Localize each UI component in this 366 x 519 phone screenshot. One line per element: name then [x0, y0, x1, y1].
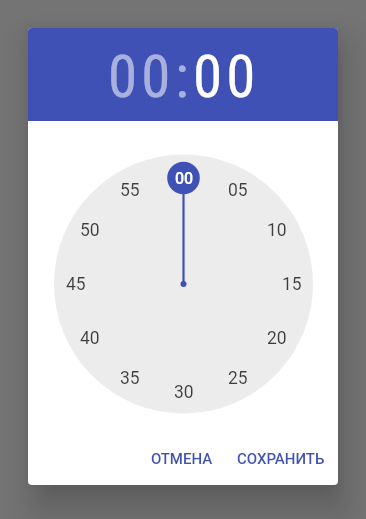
button[interactable]: 00 [169, 163, 199, 193]
button[interactable]: 45 [61, 269, 91, 299]
button[interactable]: 20 [262, 323, 292, 353]
staticText: 30 [174, 382, 194, 403]
button[interactable]: 25 [223, 363, 253, 393]
staticText: 00 [175, 169, 194, 188]
staticText: 35 [120, 368, 140, 389]
staticText: : [175, 42, 193, 111]
staticText: ОТМЕНА [151, 450, 213, 468]
staticText: СОХРАНИТЬ [237, 450, 325, 468]
staticText: 50 [80, 220, 100, 241]
button[interactable]: 00 [193, 42, 260, 111]
staticText: 10 [267, 220, 287, 241]
staticText: 15 [282, 274, 302, 295]
button[interactable]: 15 [277, 269, 307, 299]
button[interactable]: 05 [223, 175, 253, 205]
staticText: 45 [66, 274, 86, 295]
staticText: 40 [80, 328, 100, 349]
button[interactable]: 35 [115, 363, 145, 393]
button[interactable]: 50 [75, 215, 105, 245]
button[interactable]: 00 [108, 42, 175, 111]
staticText: 25 [228, 368, 248, 389]
button[interactable]: СОХРАНИТЬ [229, 440, 333, 478]
button[interactable]: 30 [169, 377, 199, 407]
button[interactable]: 55 [115, 175, 145, 205]
staticText: 20 [267, 328, 287, 349]
staticText: 05 [228, 180, 248, 201]
button[interactable]: 40 [75, 323, 105, 353]
button[interactable]: 10 [262, 215, 292, 245]
staticText: 55 [120, 180, 140, 201]
button[interactable]: ОТМЕНА [143, 440, 221, 478]
